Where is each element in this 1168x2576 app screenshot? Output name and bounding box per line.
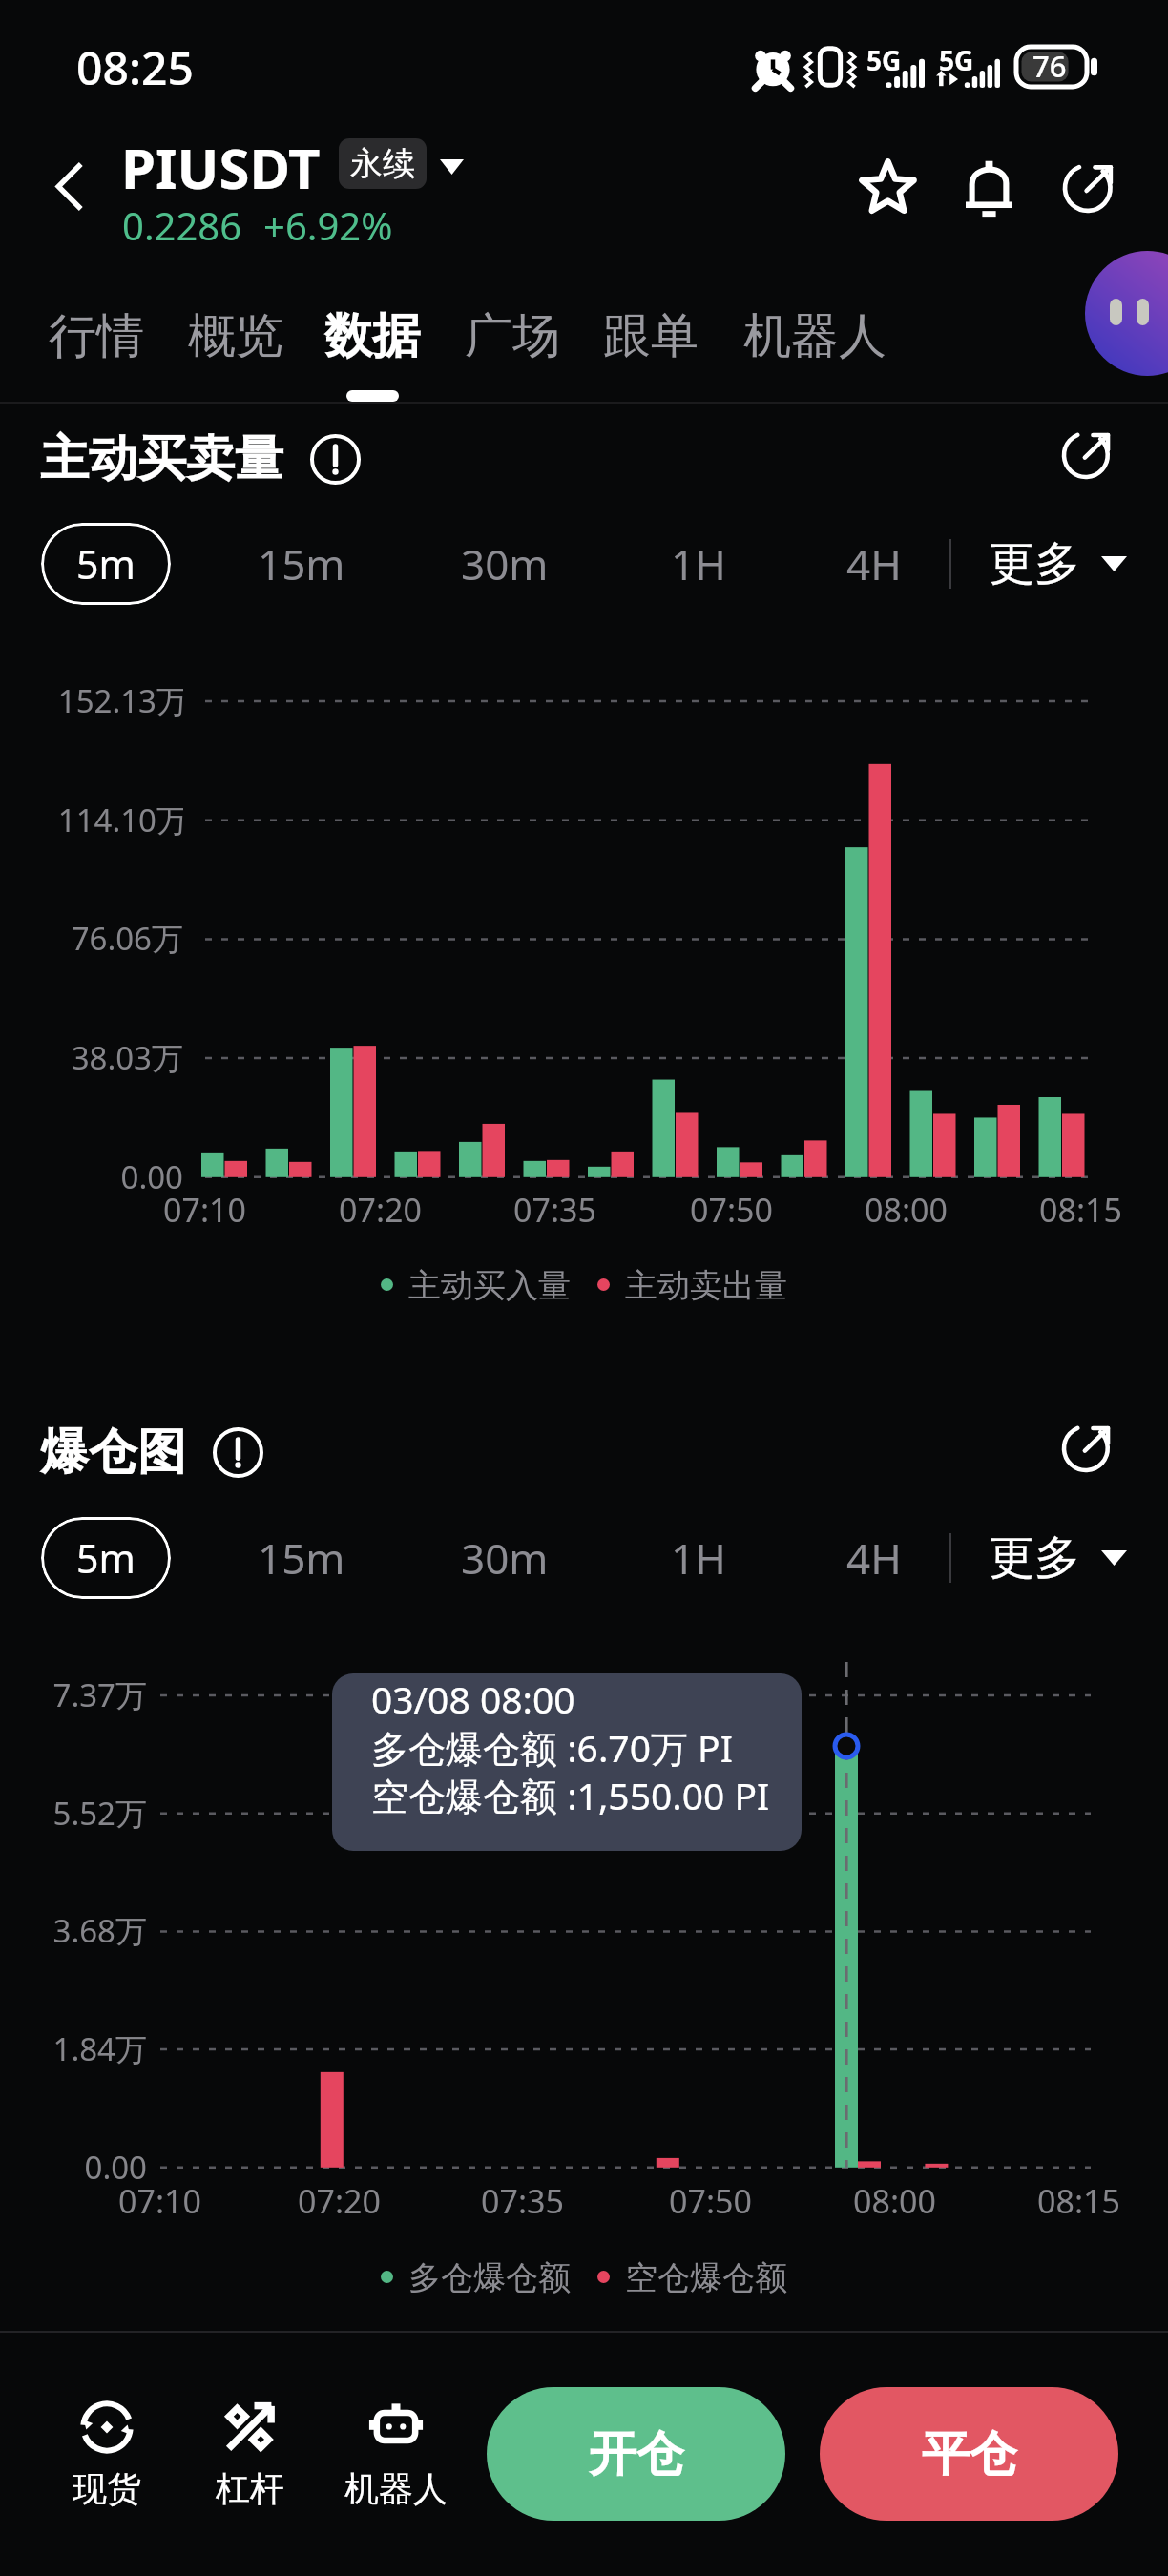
button[interactable]: 更多 xyxy=(989,1517,1127,1599)
button[interactable]: Share xyxy=(1041,136,1140,236)
staticText: 更多 xyxy=(989,1529,1080,1587)
staticText: 主动卖出量 xyxy=(625,1265,787,1303)
staticText: 76.06万 xyxy=(71,917,183,960)
staticText: 主动买入量 xyxy=(408,1265,571,1303)
staticText: 5G xyxy=(866,42,902,78)
staticText: 机器人 xyxy=(743,306,886,366)
staticText: 空仓爆仓额 :1,550.00 PI xyxy=(371,1770,770,1820)
staticText: 5m xyxy=(76,537,136,591)
staticText: 平仓 xyxy=(922,2424,1017,2484)
staticText: 38.03万 xyxy=(71,1036,183,1079)
staticText: 30m xyxy=(461,1529,549,1587)
staticText: 07:10 xyxy=(163,1188,246,1232)
button[interactable]: Expand chart xyxy=(1053,417,1125,489)
button[interactable]: 行情 xyxy=(31,306,161,425)
staticText: 1H xyxy=(671,1529,726,1587)
staticText: 多仓爆仓额 :6.70万 PI xyxy=(371,1722,733,1773)
button[interactable]: 30m xyxy=(438,1517,572,1599)
staticText: 主动买卖量 xyxy=(40,428,283,489)
staticText: 03/08 08:00 xyxy=(371,1673,575,1724)
button[interactable]: 5m xyxy=(41,1517,171,1599)
staticText: 多仓爆仓额 xyxy=(408,2257,571,2296)
staticText: PIUSDT xyxy=(121,130,321,205)
button[interactable]: 15m xyxy=(235,523,368,605)
button[interactable]: Assistant xyxy=(1085,251,1168,376)
staticText: 广场 xyxy=(465,306,560,366)
staticText: 4H xyxy=(846,1529,902,1587)
button[interactable]: 5m xyxy=(41,523,171,605)
button[interactable]: 广场 xyxy=(448,306,577,425)
button[interactable]: 1H xyxy=(632,1517,765,1599)
staticText: 杠杆 xyxy=(216,2467,284,2510)
button[interactable]: 1H xyxy=(632,523,765,605)
button[interactable]: 永续 xyxy=(339,138,427,189)
button[interactable]: 跟单 xyxy=(586,306,716,425)
button[interactable]: 开仓 xyxy=(487,2387,785,2521)
staticText: 15m xyxy=(258,1529,345,1587)
staticText: 07:10 xyxy=(118,2179,201,2223)
button[interactable]: Info xyxy=(208,1423,267,1482)
staticText: 0.00 xyxy=(120,1155,183,1198)
button[interactable]: 概览 xyxy=(171,306,301,425)
staticText: 5.52万 xyxy=(52,1792,147,1835)
button[interactable]: Alerts xyxy=(939,136,1038,236)
button[interactable]: 15m xyxy=(235,1517,368,1599)
staticText: 5G xyxy=(939,42,974,78)
button[interactable]: 现货 xyxy=(31,2390,183,2519)
button[interactable]: 30m xyxy=(438,523,572,605)
staticText: 行情 xyxy=(49,306,144,366)
staticText: 07:20 xyxy=(339,1188,422,1232)
staticText: 数据 xyxy=(324,306,420,366)
staticText: 15m xyxy=(258,535,345,592)
button[interactable]: 4H xyxy=(807,523,941,605)
staticText: 08:25 xyxy=(76,36,194,98)
staticText: 08:15 xyxy=(1037,2179,1120,2223)
staticText: 5m xyxy=(76,1531,136,1585)
staticText: 更多 xyxy=(989,535,1080,592)
button[interactable]: Expand chart xyxy=(1053,1410,1125,1483)
button[interactable]: 更多 xyxy=(989,523,1127,605)
staticText: 7.37万 xyxy=(52,1673,147,1716)
button[interactable]: Back xyxy=(29,145,111,227)
button[interactable]: 平仓 xyxy=(820,2387,1118,2521)
staticText: 07:20 xyxy=(298,2179,381,2223)
staticText: 1.84万 xyxy=(52,2027,147,2070)
staticText: 空仓爆仓额 xyxy=(625,2257,787,2296)
staticText: 爆仓图 xyxy=(40,1422,186,1483)
staticText: 08:00 xyxy=(853,2179,936,2223)
button[interactable]: 杠杆 xyxy=(174,2390,326,2519)
staticText: 76 xyxy=(1032,46,1067,86)
staticText: 概览 xyxy=(188,306,283,366)
staticText: 30m xyxy=(461,535,549,592)
staticText: 152.13万 xyxy=(57,679,183,722)
staticText: 机器人 xyxy=(344,2467,448,2510)
staticText: 3.68万 xyxy=(52,1909,147,1952)
staticText: 0.2286 xyxy=(122,199,242,251)
staticText: 0.00 xyxy=(84,2146,147,2189)
staticText: 跟单 xyxy=(603,306,699,366)
button[interactable]: 4H xyxy=(807,1517,941,1599)
staticText: 07:35 xyxy=(481,2179,564,2223)
staticText: 永续 xyxy=(350,143,415,184)
staticText: 现货 xyxy=(73,2467,141,2510)
staticText: 08:15 xyxy=(1039,1188,1122,1232)
staticText: 开仓 xyxy=(589,2424,684,2484)
button[interactable]: 数据 xyxy=(307,306,437,425)
staticText: 4H xyxy=(846,535,902,592)
staticText: 08:00 xyxy=(865,1188,948,1232)
staticText: 114.10万 xyxy=(57,799,183,841)
staticText: 07:50 xyxy=(690,1188,773,1232)
button[interactable]: 机器人 xyxy=(724,306,906,425)
button[interactable]: Info xyxy=(305,429,365,488)
staticText: 1H xyxy=(671,535,726,592)
staticText: 07:50 xyxy=(669,2179,752,2223)
button[interactable]: 机器人 xyxy=(320,2390,472,2519)
staticText: 07:35 xyxy=(513,1188,596,1232)
staticText: +6.92% xyxy=(263,199,393,251)
button[interactable]: Favorite xyxy=(838,136,937,236)
